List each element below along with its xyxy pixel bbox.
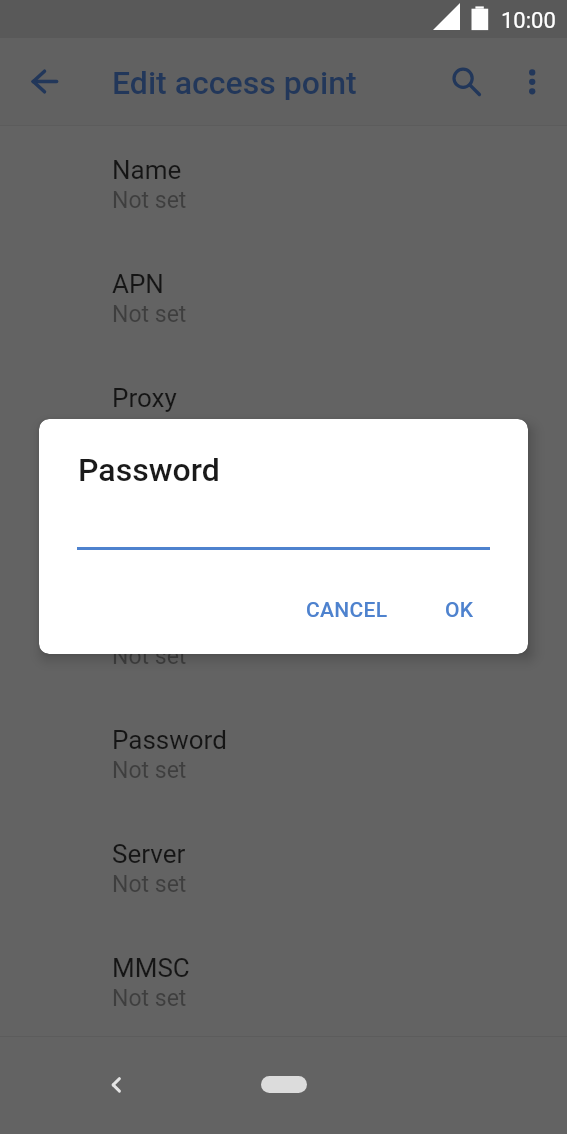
button[interactable]: Password field: [77, 519, 490, 550]
staticText: Not set: [112, 871, 187, 898]
staticText: CANCEL: [306, 598, 388, 623]
staticText: MMS proxy: [112, 1067, 243, 1097]
button[interactable]: Proxy: [0, 354, 567, 468]
staticText: Not set: [112, 415, 187, 442]
button[interactable]: Username: [0, 582, 567, 696]
staticText: Proxy: [112, 383, 177, 413]
button[interactable]: Port: [0, 468, 567, 582]
staticText: APN: [112, 269, 164, 299]
button[interactable]: Server: [0, 810, 567, 924]
staticText: Not set: [112, 643, 187, 670]
button[interactable]: MMS proxy: [0, 1038, 567, 1134]
button[interactable]: Search: [441, 57, 493, 109]
button[interactable]: MMSC: [0, 924, 567, 1038]
staticText: Server: [112, 839, 186, 869]
button[interactable]: Navigate up: [19, 56, 71, 108]
staticText: Password: [112, 725, 227, 755]
staticText: Not set: [112, 985, 187, 1012]
button[interactable]: More options: [506, 56, 558, 108]
button[interactable]: Password: [0, 696, 567, 810]
staticText: 10:00: [501, 8, 556, 34]
staticText: OK: [445, 598, 474, 623]
staticText: Not set: [112, 187, 187, 214]
staticText: Not set: [112, 529, 187, 556]
staticText: Password: [78, 451, 220, 489]
staticText: MMSC: [112, 953, 190, 983]
staticText: Not set: [112, 301, 187, 328]
button[interactable]: Home: [261, 1076, 307, 1093]
staticText: Not set: [112, 757, 187, 784]
button[interactable]: APN: [0, 240, 567, 354]
staticText: Name: [112, 155, 182, 185]
button[interactable]: CANCEL: [284, 584, 410, 637]
button[interactable]: Back: [94, 1055, 138, 1099]
button[interactable]: Name: [0, 126, 567, 240]
staticText: Edit access point: [112, 64, 357, 102]
button[interactable]: OK: [423, 584, 496, 637]
